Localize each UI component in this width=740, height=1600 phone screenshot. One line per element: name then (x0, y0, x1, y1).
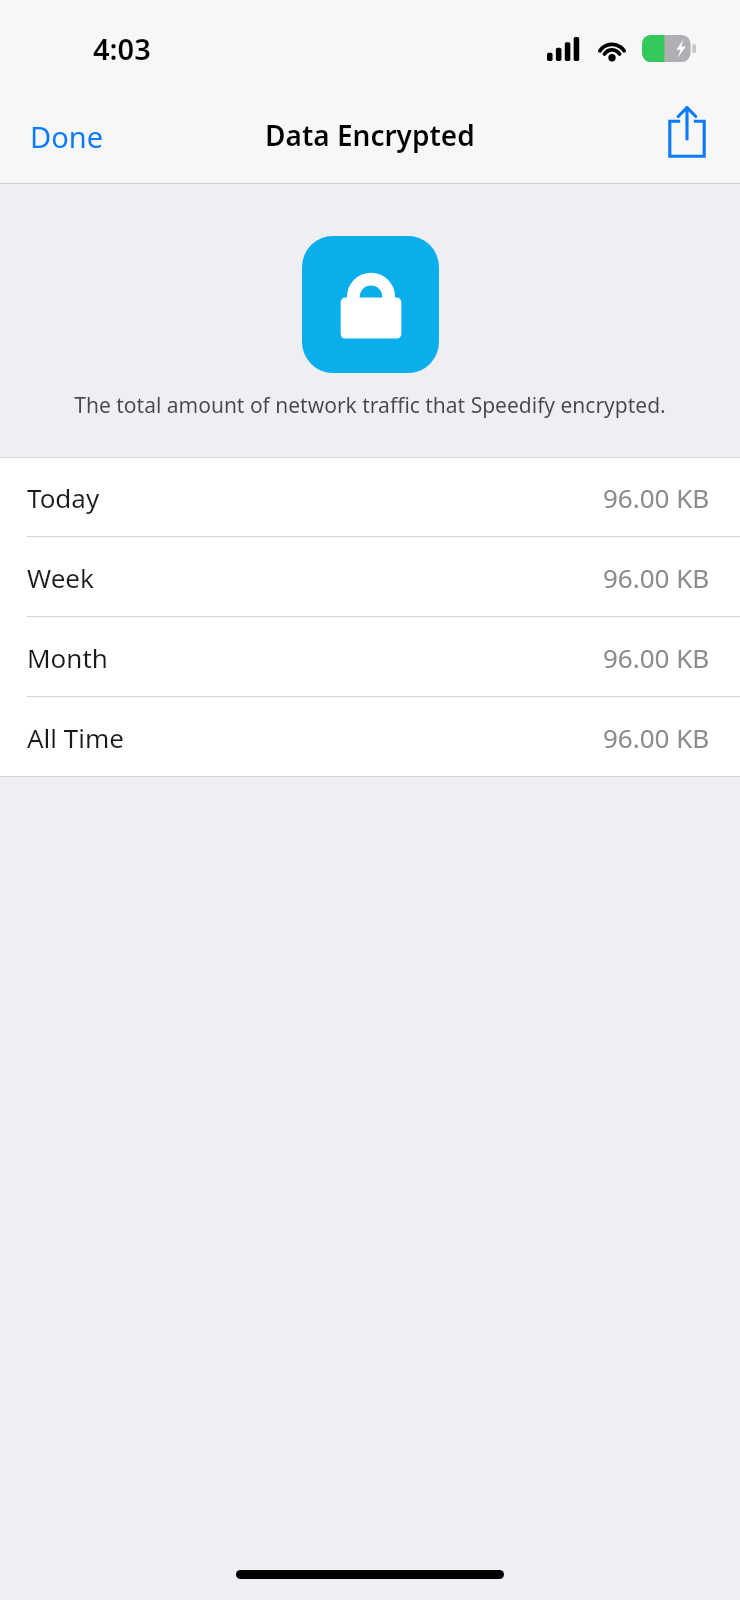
staticText: 96.00 KB (603, 480, 710, 515)
staticText: All Time (27, 720, 124, 755)
staticText: Data Encrypted (265, 116, 475, 154)
button[interactable]: All Time (0, 697, 740, 777)
button[interactable]: Month (0, 617, 740, 697)
button[interactable]: Week (0, 537, 740, 617)
staticText: Week (27, 560, 94, 595)
button[interactable]: Share (662, 100, 712, 164)
staticText: 4:03 (93, 29, 151, 68)
button[interactable]: Done (18, 111, 115, 162)
staticText: Done (30, 117, 103, 156)
staticText: Today (27, 480, 100, 515)
staticText: 96.00 KB (603, 560, 710, 595)
staticText: 96.00 KB (603, 720, 710, 755)
button[interactable]: Today (0, 457, 740, 537)
staticText: The total amount of network traffic that… (74, 391, 666, 420)
staticText: Month (27, 640, 108, 675)
staticText: 96.00 KB (603, 640, 710, 675)
